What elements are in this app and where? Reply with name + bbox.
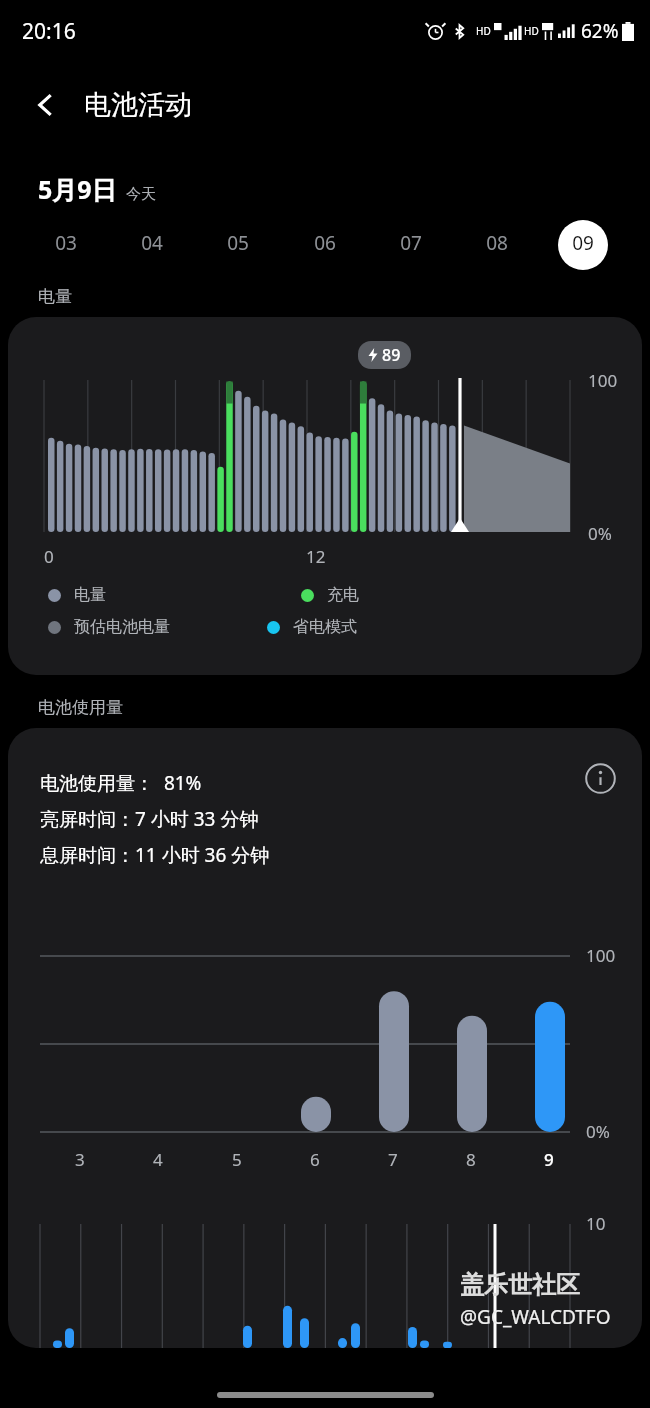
staticText: 5 xyxy=(232,1148,242,1171)
staticText: 4 xyxy=(153,1148,163,1171)
staticText: 04 xyxy=(141,230,163,256)
staticText: 亮屏时间：7 小时 33 分钟 xyxy=(40,806,259,832)
staticText: 9 xyxy=(544,1148,554,1171)
staticText: 0% xyxy=(586,1120,610,1143)
staticText: 09 xyxy=(572,230,594,256)
staticText: HD xyxy=(476,24,491,38)
staticText: 0% xyxy=(588,522,612,545)
staticText: 5月9日 xyxy=(38,172,117,206)
staticText: 03 xyxy=(55,230,77,256)
button[interactable]: 05 xyxy=(213,218,263,268)
staticText: 20:16 xyxy=(22,17,76,46)
button[interactable]: 100 xyxy=(8,317,642,675)
button[interactable]: 06 xyxy=(300,218,350,268)
staticText: 100 xyxy=(588,369,618,392)
staticText: 8 xyxy=(466,1148,476,1171)
staticText: 预估电池电量 xyxy=(74,617,170,637)
staticText: 6 xyxy=(310,1148,320,1171)
staticText: 06 xyxy=(314,230,336,256)
staticText: 10 xyxy=(586,1212,606,1235)
staticText: 3 xyxy=(75,1148,85,1171)
staticText: 07 xyxy=(400,230,422,256)
staticText: 电量 xyxy=(38,286,72,307)
staticText: @GC_WALCDTFO xyxy=(460,1304,611,1330)
staticText: 充电 xyxy=(327,585,359,605)
staticText: 今天 xyxy=(126,185,156,204)
button[interactable]: Information xyxy=(578,756,622,800)
staticText: HD xyxy=(524,24,539,38)
staticText: 电量 xyxy=(74,585,106,605)
button[interactable]: 03 xyxy=(41,218,91,268)
staticText: 电池使用量 xyxy=(38,697,123,718)
staticText: 62% xyxy=(581,18,619,44)
staticText: 89 xyxy=(382,344,401,366)
staticText: 0 xyxy=(44,545,54,568)
staticText: 12 xyxy=(306,545,326,568)
staticText: 盖乐世社区 xyxy=(460,1270,580,1300)
staticText: 息屏时间：11 小时 36 分钟 xyxy=(40,842,270,868)
button[interactable]: 电池使用量： 81% xyxy=(8,728,642,1348)
button[interactable]: 04 xyxy=(127,218,177,268)
staticText: 05 xyxy=(227,230,249,256)
staticText: 7 xyxy=(388,1148,398,1171)
button[interactable]: 09 xyxy=(558,218,608,268)
staticText: 100 xyxy=(586,944,616,967)
button[interactable]: 08 xyxy=(472,218,522,268)
staticText: 08 xyxy=(486,230,508,256)
button[interactable]: Back xyxy=(22,81,70,129)
staticText: 电池活动 xyxy=(84,88,192,122)
button[interactable]: 07 xyxy=(386,218,436,268)
staticText: 电池使用量： 81% xyxy=(40,770,202,796)
staticText: 省电模式 xyxy=(293,617,357,637)
